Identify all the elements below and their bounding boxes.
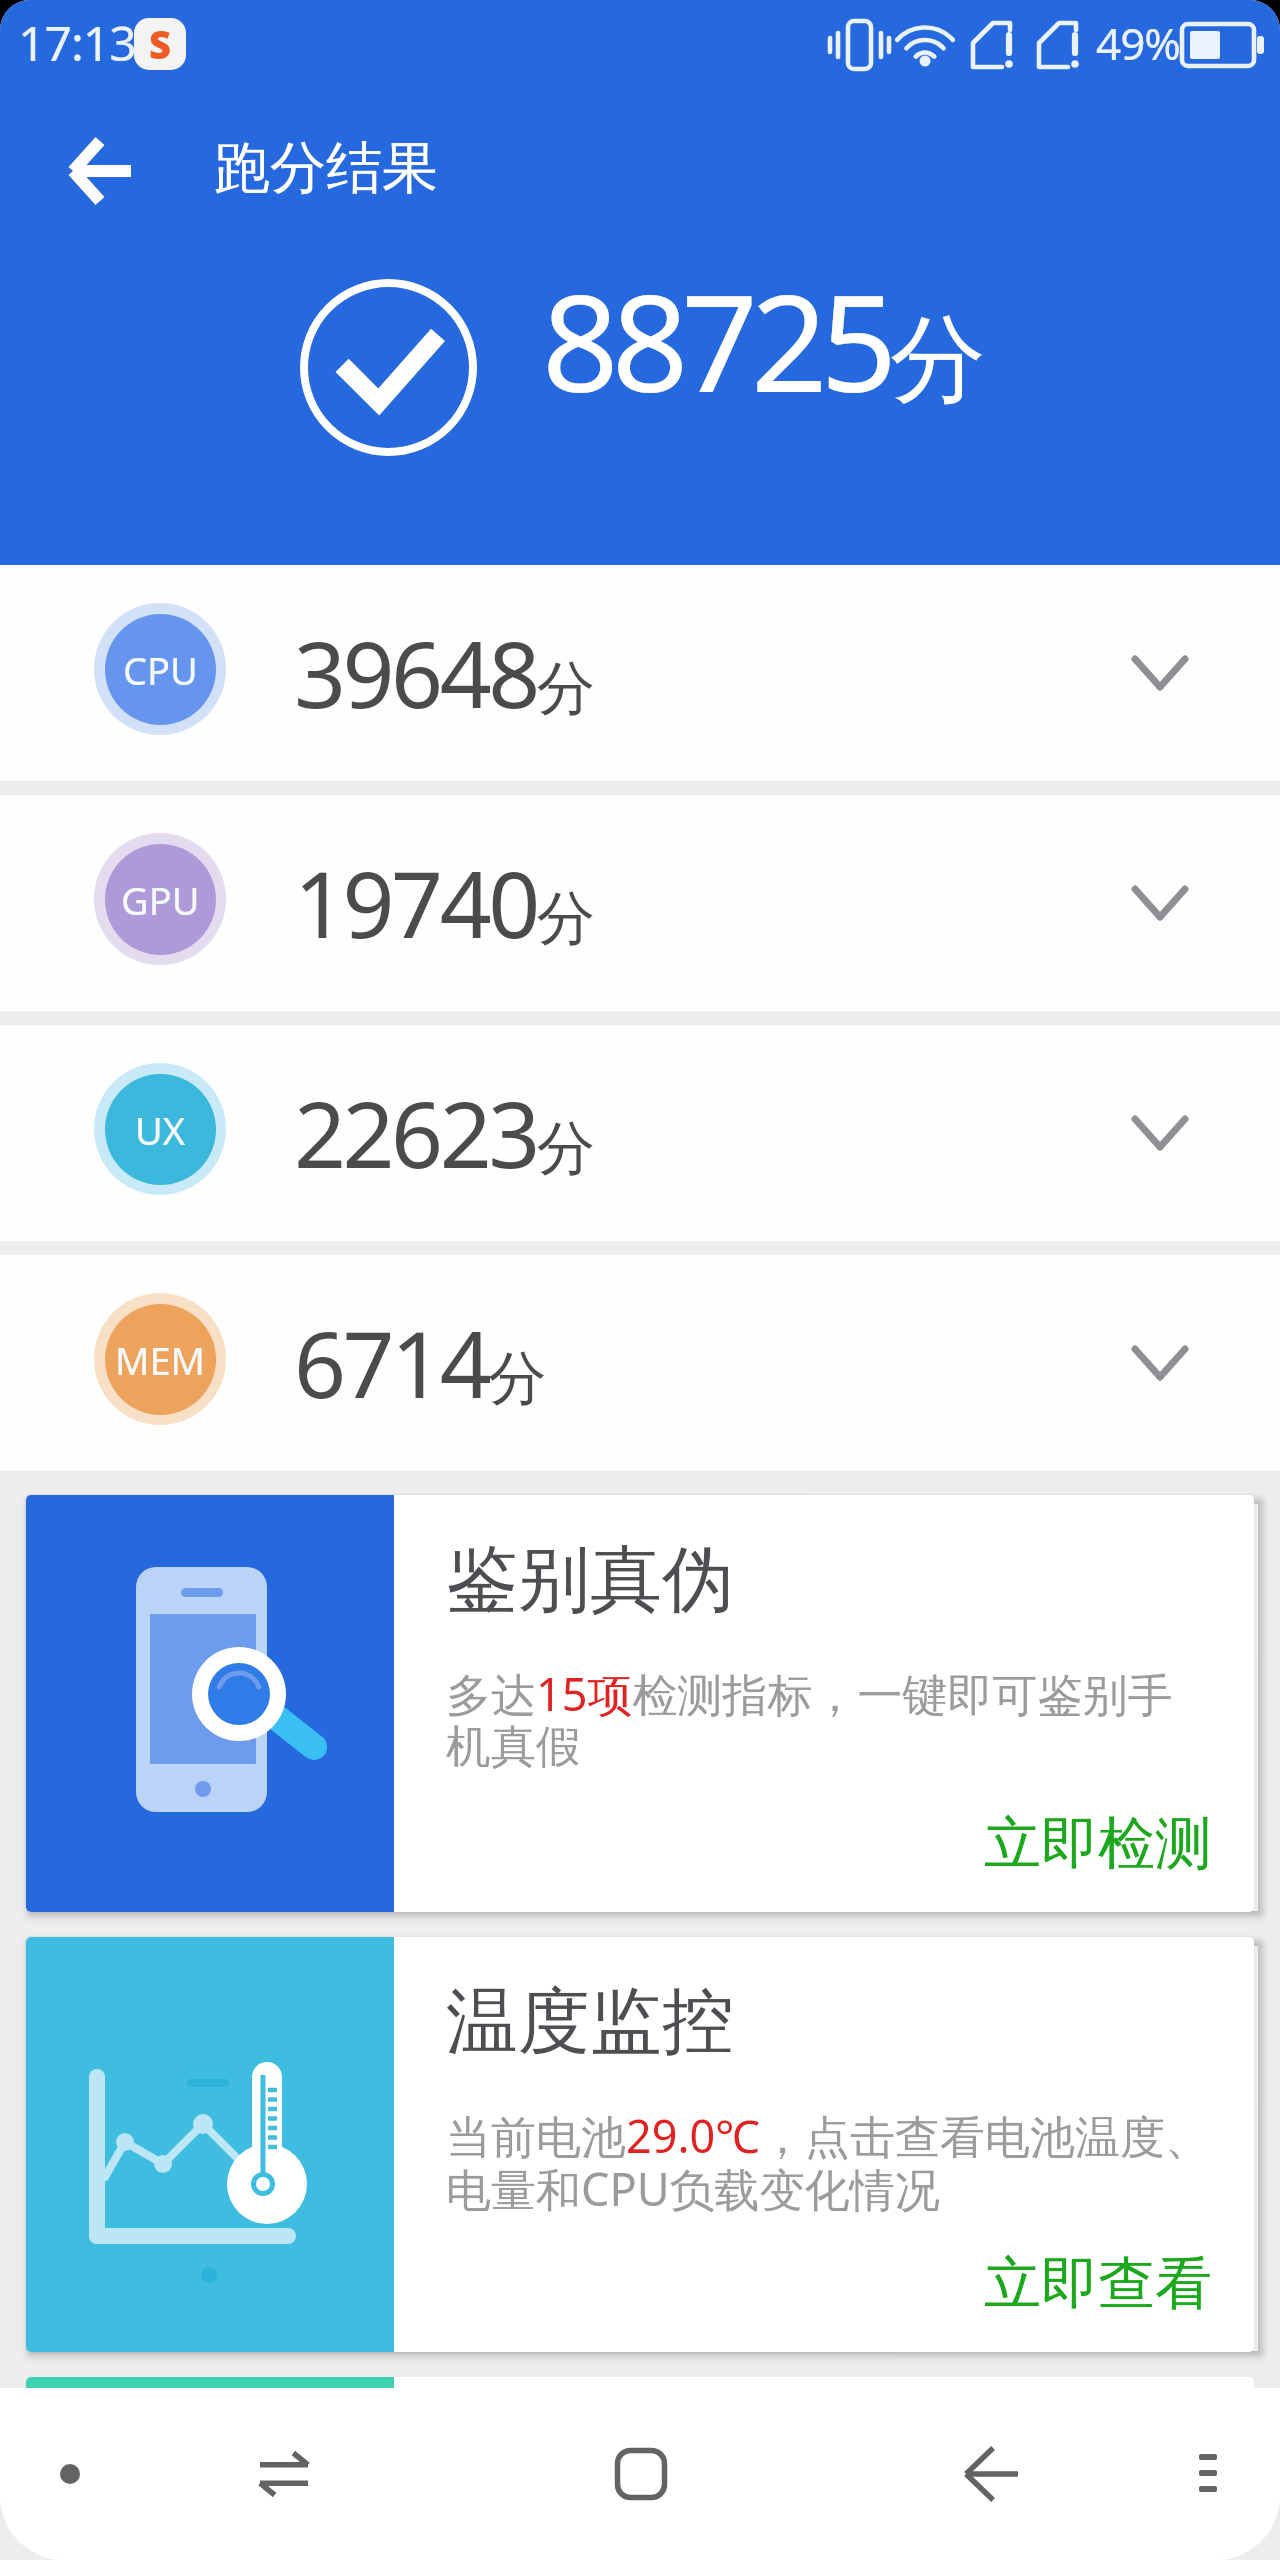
- staticText: CPU: [123, 644, 198, 696]
- button[interactable]: GPU: [0, 795, 1280, 1011]
- button[interactable]: More tools: [26, 2377, 1254, 2437]
- button[interactable]: Back: [932, 2414, 1052, 2534]
- staticText: 39648分: [294, 611, 595, 735]
- staticText: 88725分: [542, 249, 986, 432]
- staticText: 温度监控: [446, 1977, 734, 2068]
- button[interactable]: MEM: [0, 1255, 1280, 1471]
- staticText: 49%: [1096, 13, 1180, 73]
- staticText: 17:13: [18, 10, 136, 75]
- staticText: 6714分: [294, 1301, 547, 1425]
- button[interactable]: Assistant: [10, 2414, 130, 2534]
- staticText: 19740分: [294, 841, 595, 965]
- button[interactable]: 鉴别真伪: [26, 1495, 1254, 1912]
- staticText: 鉴别真伪: [446, 1535, 734, 1626]
- staticText: UX: [135, 1104, 186, 1156]
- button[interactable]: UX: [0, 1025, 1280, 1241]
- button[interactable]: 温度监控: [26, 1937, 1254, 2352]
- staticText: 多达15项检测指标，一键即可鉴别手机真假: [446, 1663, 1206, 1775]
- staticText: S: [149, 18, 171, 70]
- staticText: 立即查看: [984, 2248, 1212, 2320]
- button[interactable]: Back: [38, 109, 162, 233]
- staticText: 跑分结果: [214, 133, 438, 204]
- button[interactable]: Recents: [581, 2414, 701, 2534]
- button[interactable]: CPU: [0, 565, 1280, 781]
- button[interactable]: More options: [1148, 2414, 1268, 2534]
- staticText: 立即检测: [984, 1808, 1212, 1880]
- staticText: 22623分: [294, 1071, 595, 1195]
- staticText: 当前电池29.0℃，点击查看电池温度、电量和CPU负载变化情况: [446, 2105, 1236, 2219]
- button[interactable]: Switch apps: [224, 2414, 344, 2534]
- staticText: GPU: [121, 874, 200, 926]
- staticText: MEM: [115, 1334, 206, 1386]
